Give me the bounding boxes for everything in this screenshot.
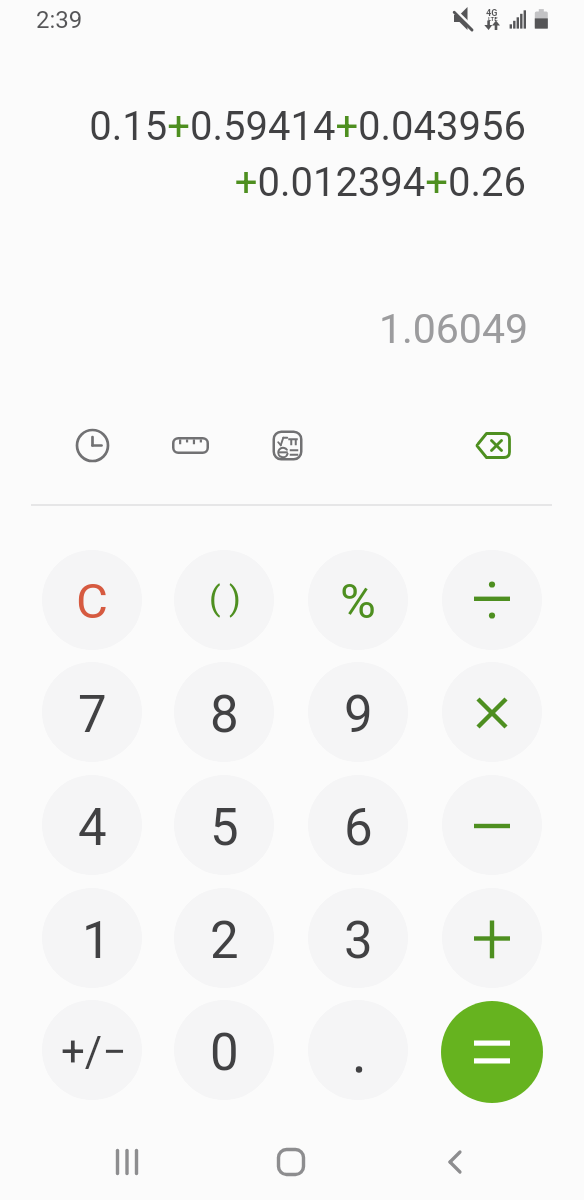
button[interactable]: Unit converter	[160, 415, 221, 476]
button[interactable]: History	[62, 415, 123, 476]
staticText: 7	[78, 685, 107, 745]
staticText: 3	[344, 911, 373, 971]
button[interactable]: %	[308, 550, 408, 650]
button[interactable]: C	[42, 550, 142, 650]
staticText: 9	[344, 685, 373, 745]
button[interactable]: 4	[42, 775, 142, 875]
button[interactable]: Plus	[442, 888, 542, 988]
staticText: 1	[82, 911, 111, 971]
button[interactable]: Equals	[441, 1001, 543, 1103]
button[interactable]: 3	[308, 888, 408, 988]
staticText: 2	[210, 911, 239, 971]
button[interactable]: Scientific calculator	[257, 415, 318, 476]
staticText: 1.06049	[0, 305, 528, 353]
button[interactable]: Minus	[442, 775, 542, 875]
staticText: 8	[210, 685, 239, 745]
staticText: 2:39	[36, 6, 83, 34]
staticText: 5	[210, 798, 239, 858]
button[interactable]: 2	[174, 888, 274, 988]
staticText: ( )	[209, 578, 241, 618]
staticText: +/−	[61, 1027, 127, 1076]
staticText: +0.012394+0.26	[0, 159, 526, 206]
button[interactable]: Recents	[90, 1125, 163, 1198]
button[interactable]: Home	[254, 1125, 327, 1198]
button[interactable]: 9	[308, 662, 408, 762]
staticText: LTE	[488, 15, 498, 22]
staticText: %	[340, 573, 376, 630]
button[interactable]: 5	[174, 775, 274, 875]
button[interactable]: +/−	[42, 1000, 142, 1100]
staticText: C	[76, 573, 108, 630]
button[interactable]: Decimal point	[308, 1000, 408, 1100]
button[interactable]: 1	[42, 888, 142, 988]
button[interactable]: Back	[417, 1125, 490, 1198]
button[interactable]: Divide	[442, 550, 542, 650]
staticText: 0.15+0.59414+0.043956	[0, 103, 526, 150]
button[interactable]: ( )	[174, 550, 274, 650]
staticText: 4G	[486, 8, 498, 19]
button[interactable]: 6	[308, 775, 408, 875]
button[interactable]: 7	[42, 662, 142, 762]
button[interactable]: 8	[174, 662, 274, 762]
staticText: 0	[210, 1023, 239, 1083]
staticText: 4	[78, 798, 107, 858]
button[interactable]: Backspace	[462, 415, 523, 476]
button[interactable]: Multiply	[442, 662, 542, 762]
staticText: 6	[344, 798, 373, 858]
button[interactable]: 0	[174, 1000, 274, 1100]
